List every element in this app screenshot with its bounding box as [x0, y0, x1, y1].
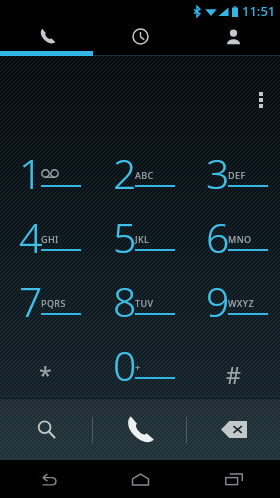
staticText: 7 — [19, 273, 43, 329]
button[interactable]: Contacts — [187, 21, 280, 51]
button[interactable]: 0 — [94, 328, 187, 392]
button[interactable]: Call — [93, 399, 186, 460]
button[interactable]: 1 — [0, 136, 94, 200]
button[interactable]: Back — [0, 460, 94, 498]
button[interactable]: 6 — [187, 200, 280, 264]
staticText: PQRS — [41, 297, 66, 309]
staticText: 0 — [113, 337, 137, 393]
button[interactable]: * — [0, 328, 94, 392]
button[interactable]: Search — [0, 399, 92, 460]
button[interactable]: 3 — [187, 136, 280, 200]
staticText: 2 — [113, 145, 137, 201]
staticText: 1 — [19, 145, 43, 201]
button[interactable]: 7 — [0, 264, 94, 328]
staticText: TUV — [135, 297, 154, 309]
staticText: 9 — [206, 273, 230, 329]
button[interactable]: Call log — [94, 21, 187, 51]
staticText: 6 — [206, 209, 230, 265]
button[interactable]: 5 — [94, 200, 187, 264]
button[interactable]: Delete — [187, 399, 280, 460]
staticText: * — [39, 359, 52, 390]
button[interactable]: # — [187, 328, 280, 392]
button[interactable]: Home — [94, 460, 187, 498]
staticText: JKL — [135, 233, 150, 245]
button[interactable]: Recents — [187, 460, 280, 498]
staticText: 11:51 — [242, 2, 276, 20]
button[interactable]: 2 — [94, 136, 187, 200]
staticText: + — [135, 361, 141, 373]
staticText: 5 — [113, 209, 137, 265]
staticText: # — [226, 359, 241, 390]
staticText: 8 — [113, 273, 137, 329]
staticText: GHI — [41, 233, 59, 245]
button[interactable]: More options — [248, 87, 274, 113]
button[interactable]: Dialer — [0, 21, 94, 51]
staticText: WXYZ — [228, 297, 254, 309]
button[interactable]: 8 — [94, 264, 187, 328]
staticText: 4 — [19, 209, 43, 265]
button[interactable]: 4 — [0, 200, 94, 264]
staticText: ABC — [135, 169, 154, 181]
staticText: 3 — [206, 145, 230, 201]
staticText: DEF — [228, 169, 246, 181]
staticText: MNO — [228, 233, 252, 245]
button[interactable]: 9 — [187, 264, 280, 328]
